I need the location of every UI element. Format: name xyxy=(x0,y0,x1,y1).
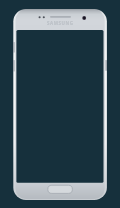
staticText: SAMSUNG xyxy=(47,20,74,26)
